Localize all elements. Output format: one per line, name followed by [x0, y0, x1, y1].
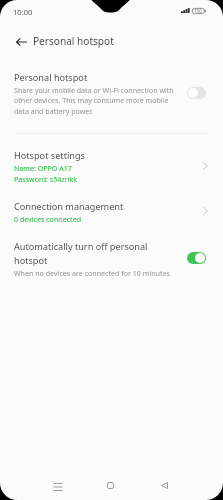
staticText: 0 devices connected — [14, 214, 81, 224]
button[interactable]: Home — [96, 471, 125, 500]
button[interactable]: Recent apps — [43, 472, 72, 500]
staticText: Hotspot settings — [14, 149, 85, 161]
staticText: Name: OPPO A17 Password: s54zrikk — [14, 163, 78, 184]
button[interactable]: Turn off — [187, 252, 206, 264]
button[interactable]: Connection management — [0, 192, 223, 228]
button[interactable]: Hotspot settings — [0, 141, 223, 187]
button[interactable]: Back — [150, 471, 179, 500]
button[interactable]: Back — [7, 33, 36, 50]
staticText: Personal hotspot — [33, 34, 114, 48]
staticText: Share your mobile data or Wi-Fi connecti… — [14, 85, 179, 116]
staticText: 100 — [191, 8, 205, 14]
staticText: 10:00 — [13, 7, 33, 17]
button[interactable]: Personal hotspot — [0, 63, 223, 131]
staticText: When no devices are connected for 10 min… — [14, 268, 170, 278]
button[interactable]: Turn on — [187, 87, 206, 99]
button[interactable]: Automatically turn off personal hotspot — [0, 232, 223, 278]
staticText: Personal hotspot — [14, 71, 88, 83]
staticText: Automatically turn off personal hotspot — [14, 240, 172, 267]
staticText: Connection management — [14, 200, 124, 212]
